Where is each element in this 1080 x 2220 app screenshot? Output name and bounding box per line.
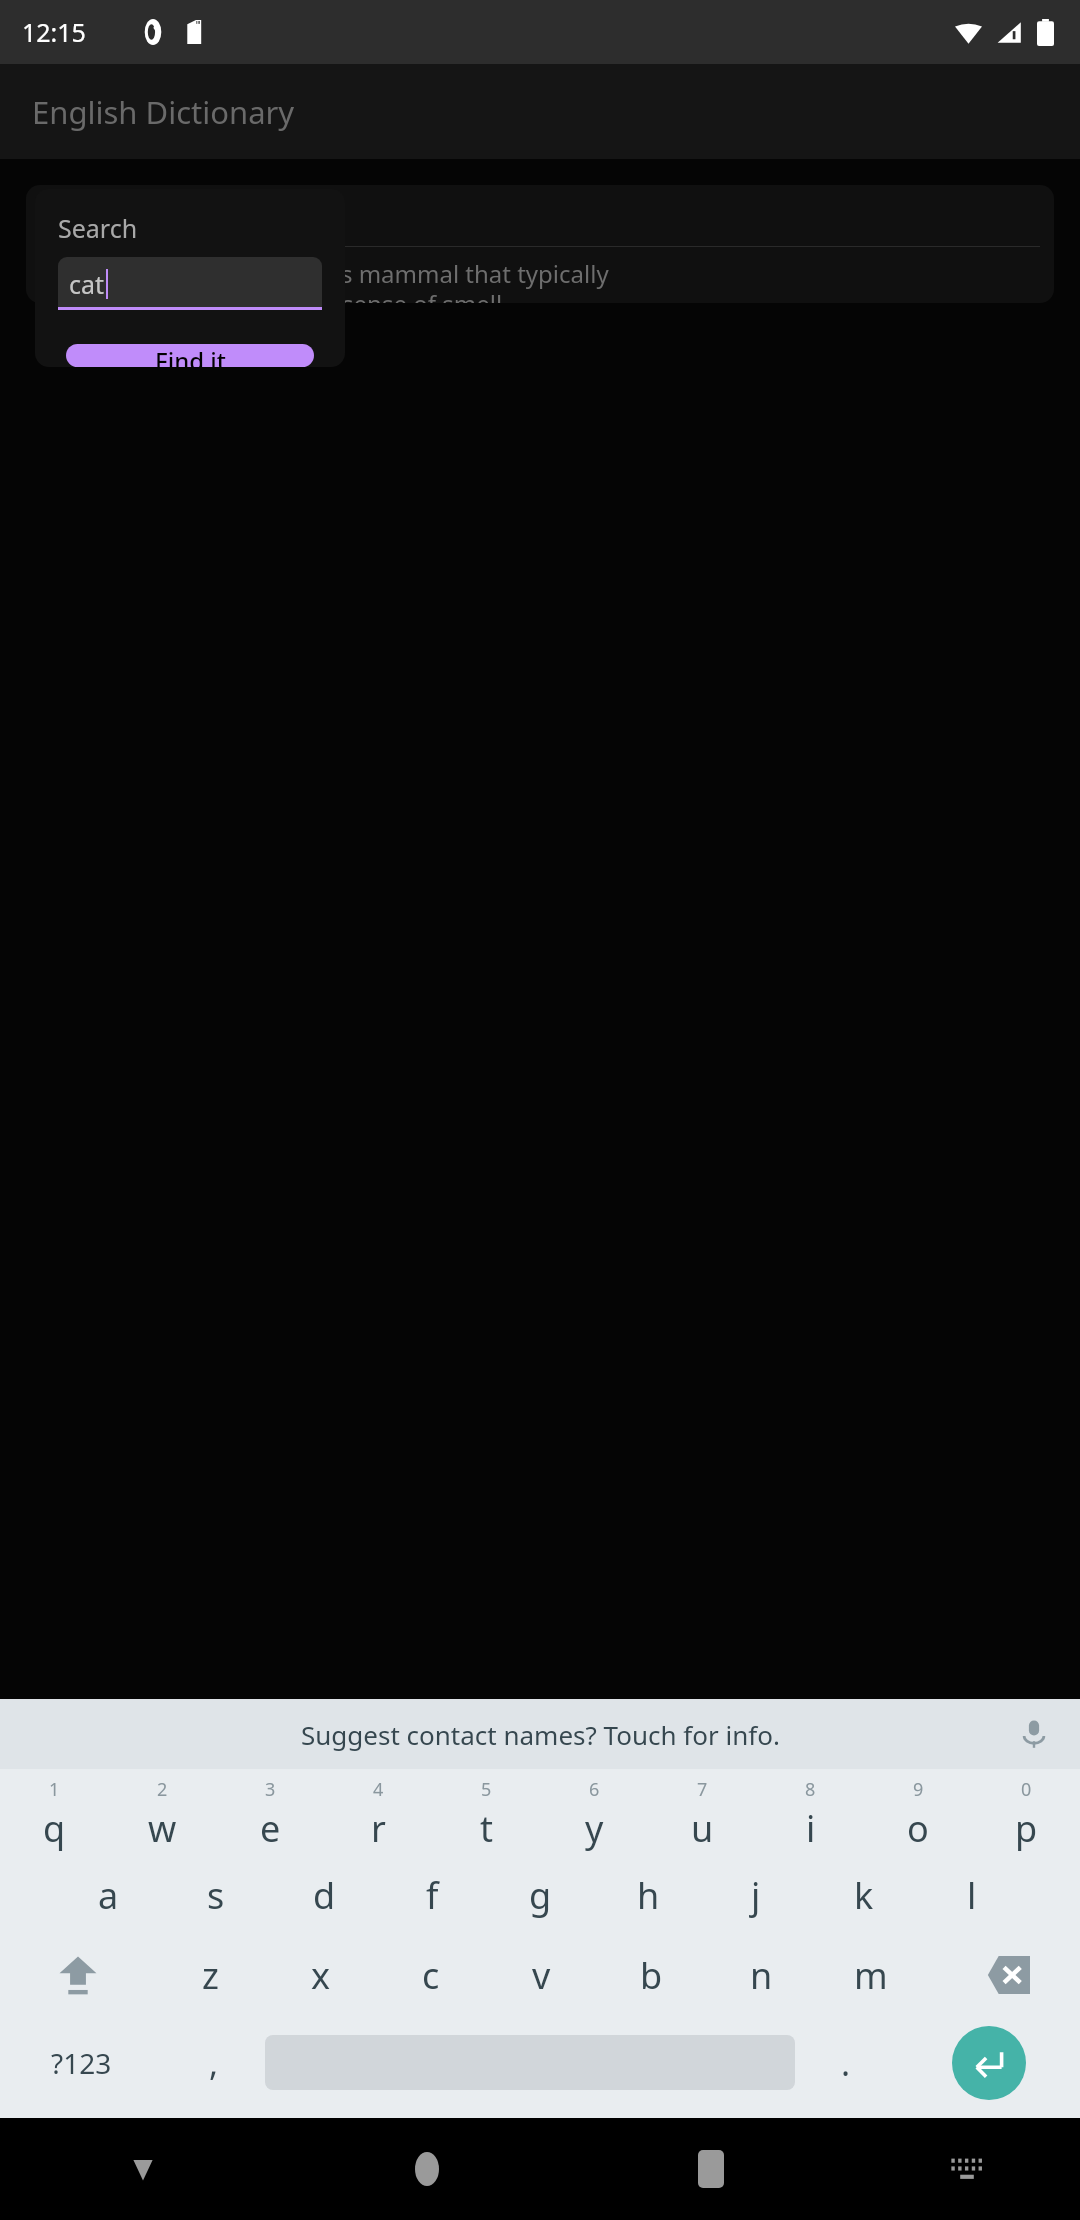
staticText: e [260,1804,281,1853]
button[interactable]: g [486,1855,594,1935]
staticText: b [640,1951,663,2000]
staticText: f [426,1871,439,1920]
staticText: English Dictionary [32,91,295,133]
staticText: cat [69,267,105,301]
staticText: i [806,1804,816,1853]
button[interactable]: x [266,1935,376,2015]
button[interactable]: 2 [108,1775,216,1855]
button[interactable]: Shift [0,1935,155,2015]
staticText: s [207,1871,225,1920]
button[interactable]: m [816,1935,926,2015]
staticText: p [1015,1804,1038,1853]
button[interactable]: 3 [216,1775,324,1855]
staticText: x [311,1951,331,2000]
staticText: 12:15 [22,15,86,49]
staticText: y [585,1804,604,1853]
staticText: a [98,1871,119,1920]
button[interactable]: n [706,1935,816,2015]
button[interactable]: s [162,1855,270,1935]
button[interactable]: Backspace [926,1935,1080,2015]
button[interactable]: 4 [324,1775,432,1855]
button[interactable]: Voice input [1012,1712,1056,1756]
staticText: n [750,1951,773,2000]
staticText: j [751,1871,761,1920]
button[interactable]: f [378,1855,486,1935]
staticText: Search [58,211,138,245]
button[interactable]: b [596,1935,706,2015]
staticText: 4 [373,1777,384,1802]
staticText: 3 [265,1777,276,1802]
button[interactable]: k [810,1855,918,1935]
staticText: t [480,1804,493,1853]
staticText: k [854,1871,874,1920]
staticText: 6 [589,1777,600,1802]
button[interactable]: Find it [66,344,314,367]
staticText: Find it [155,344,226,367]
staticText: d [313,1871,336,1920]
staticText: q [43,1804,66,1853]
staticText: w [148,1804,177,1853]
staticText: h [637,1871,660,1920]
button[interactable]: 0 [972,1775,1080,1855]
button[interactable]: d [270,1855,378,1935]
button[interactable]: Recents [569,2118,853,2220]
staticText: 1 [49,1777,60,1802]
button[interactable]: ?123 [0,2015,163,2110]
button[interactable]: 1 [0,1775,108,1855]
staticText: c [422,1951,440,2000]
staticText: ?123 [51,2044,112,2082]
button[interactable]: . [795,2015,897,2110]
button[interactable]: 5 [432,1775,540,1855]
button[interactable]: 7 [648,1775,756,1855]
staticText: m [854,1951,888,2000]
staticText: 7 [697,1777,708,1802]
staticText: 0 [1021,1777,1032,1802]
button[interactable]: cat [58,257,322,310]
button[interactable]: c [376,1935,486,2015]
button[interactable]: a [54,1855,162,1935]
staticText: z [202,1951,219,2000]
staticText: Suggest contact names? Touch for info. [301,1717,780,1752]
staticText: 5 [481,1777,492,1802]
button[interactable]: Switch keyboard [853,2118,1080,2220]
button[interactable]: 8 [756,1775,864,1855]
button[interactable]: j [702,1855,810,1935]
staticText: g [529,1871,552,1920]
button[interactable]: h [594,1855,702,1935]
staticText: dog [41,199,91,236]
button[interactable]: Home [285,2118,569,2220]
button[interactable]: 9 [864,1775,972,1855]
button[interactable]: Enter [897,2015,1080,2110]
staticText: 9 [913,1777,924,1802]
staticText: u [691,1804,714,1853]
staticText: . [841,2040,851,2086]
button[interactable]: Back [0,2118,285,2220]
staticText: o [907,1804,929,1853]
button[interactable]: dog [26,185,1054,303]
button[interactable]: 6 [540,1775,648,1855]
button[interactable]: , [163,2015,265,2110]
staticText: 8 [805,1777,816,1802]
staticText: a domesticated carnivorous mammal that t… [40,257,609,303]
button[interactable]: Suggest contact names? Touch for info. [0,1699,1080,1769]
staticText: l [967,1871,977,1920]
staticText: v [532,1951,551,2000]
button[interactable]: v [486,1935,596,2015]
staticText: r [371,1804,386,1853]
staticText: , [209,2040,219,2086]
button[interactable]: z [155,1935,266,2015]
staticText: 2 [157,1777,168,1802]
button[interactable]: l [918,1855,1026,1935]
